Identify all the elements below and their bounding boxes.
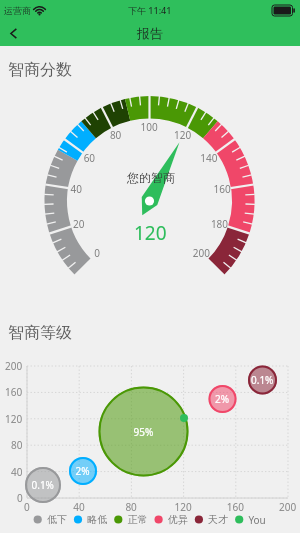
staticText: 智商分数 bbox=[8, 60, 72, 80]
staticText: 报告 bbox=[137, 25, 163, 41]
staticText: 运营商 bbox=[4, 5, 31, 16]
staticText: 下午 11:41 bbox=[128, 4, 172, 16]
staticText: 智商等级 bbox=[8, 323, 72, 343]
button[interactable]: Back bbox=[0, 20, 26, 46]
